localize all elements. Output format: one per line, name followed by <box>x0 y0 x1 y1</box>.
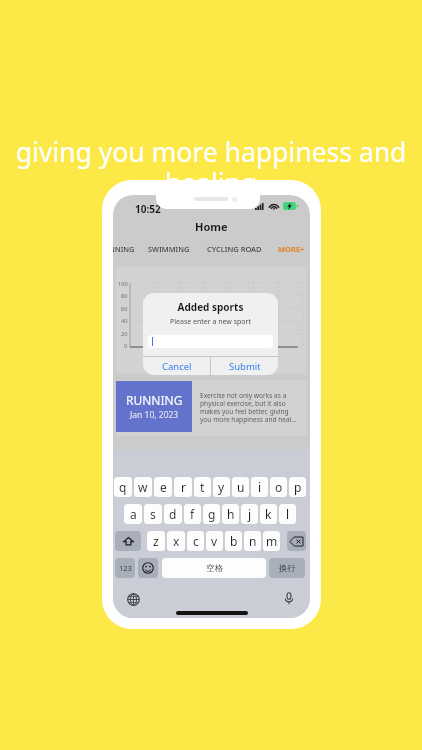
staticText: s <box>150 506 156 522</box>
staticText: 40 <box>121 317 128 325</box>
button[interactable]: 空格 <box>162 558 266 578</box>
button[interactable]: Shift <box>115 531 141 551</box>
button[interactable]: a <box>124 504 142 524</box>
button[interactable]: x <box>167 531 185 551</box>
button[interactable]: Cancel <box>143 357 210 375</box>
staticText: Submit <box>229 360 261 373</box>
button[interactable]: Dictate <box>281 590 297 606</box>
staticText: c <box>193 533 199 549</box>
button[interactable]: g <box>203 504 220 524</box>
staticText: 100 <box>118 280 128 288</box>
button[interactable]: NNING <box>113 242 135 255</box>
staticText: x <box>173 533 180 549</box>
staticText: r <box>181 479 186 495</box>
staticText: f <box>190 506 195 522</box>
staticText: Jan 10, 2023 <box>130 409 179 421</box>
staticText: 80 <box>121 292 128 300</box>
staticText: a <box>130 506 137 522</box>
staticText: 0 <box>124 342 128 350</box>
staticText: giving you more happiness and healing <box>0 134 422 200</box>
staticText: n <box>249 533 257 549</box>
staticText: 10:52 <box>135 202 161 216</box>
staticText: Home <box>195 219 228 234</box>
button[interactable]: q <box>114 477 132 497</box>
button[interactable]: j <box>241 504 258 524</box>
button[interactable]: Backspace <box>287 531 306 551</box>
staticText: q <box>119 479 127 495</box>
staticText: CYCLING ROAD <box>207 244 262 254</box>
staticText: t <box>200 479 205 495</box>
button[interactable]: y <box>213 477 230 497</box>
staticText: 换行 <box>279 563 296 574</box>
staticText: e <box>160 479 167 495</box>
button[interactable]: SWIMMING <box>148 242 190 255</box>
button[interactable]: 换行 <box>269 558 305 578</box>
staticText: Added sports <box>143 300 278 314</box>
button[interactable]: u <box>232 477 249 497</box>
button[interactable]: 123 <box>115 558 135 578</box>
button[interactable]: v <box>206 531 223 551</box>
button[interactable]: e <box>154 477 172 497</box>
button[interactable]: o <box>270 477 287 497</box>
staticText: p <box>294 479 302 495</box>
button[interactable]: d <box>164 504 182 524</box>
button[interactable]: i <box>251 477 268 497</box>
button[interactable]: MORE+ <box>276 242 307 255</box>
staticText: j <box>248 506 252 522</box>
button[interactable]: t <box>194 477 211 497</box>
staticText: o <box>275 479 283 495</box>
staticText: b <box>230 533 238 549</box>
staticText: v <box>211 533 218 549</box>
staticText: NNING <box>113 244 135 254</box>
staticText: h <box>227 506 235 522</box>
button[interactable]: r <box>174 477 192 497</box>
staticText: m <box>266 533 278 549</box>
staticText: 60 <box>121 305 128 313</box>
staticText: g <box>208 506 216 522</box>
staticText: k <box>265 506 272 522</box>
staticText: z <box>153 533 159 549</box>
button[interactable]: p <box>289 477 306 497</box>
button[interactable]: b <box>225 531 242 551</box>
button[interactable]: CYCLING ROAD <box>206 242 263 255</box>
staticText: 空格 <box>206 563 223 574</box>
button[interactable]: Submit <box>211 357 278 375</box>
staticText: l <box>286 506 290 522</box>
staticText: 20 <box>121 330 128 338</box>
button[interactable]: Change keyboard <box>125 591 141 607</box>
staticText: u <box>237 479 245 495</box>
staticText: MORE+ <box>278 244 305 254</box>
staticText: Exercise not only works as a physical ex… <box>200 391 301 424</box>
staticText: y <box>218 479 225 495</box>
staticText: 123 <box>119 563 132 573</box>
staticText: d <box>169 506 177 522</box>
button[interactable]: RUNNING <box>116 380 306 436</box>
staticText: Cancel <box>162 360 192 373</box>
button[interactable]: z <box>147 531 165 551</box>
staticText: w <box>138 479 148 495</box>
button[interactable]: l <box>279 504 296 524</box>
staticText: RUNNING <box>126 392 183 408</box>
button[interactable]: k <box>260 504 277 524</box>
staticText: i <box>258 479 262 495</box>
button[interactable]: c <box>187 531 204 551</box>
button[interactable]: n <box>244 531 261 551</box>
button[interactable]: m <box>263 531 280 551</box>
staticText: SWIMMING <box>148 244 190 254</box>
button[interactable]: f <box>184 504 201 524</box>
button[interactable]: w <box>134 477 152 497</box>
button[interactable]: h <box>222 504 239 524</box>
button[interactable]: s <box>144 504 162 524</box>
button[interactable]: Emoji <box>138 558 158 578</box>
staticText: Please enter a new sport <box>143 317 278 327</box>
